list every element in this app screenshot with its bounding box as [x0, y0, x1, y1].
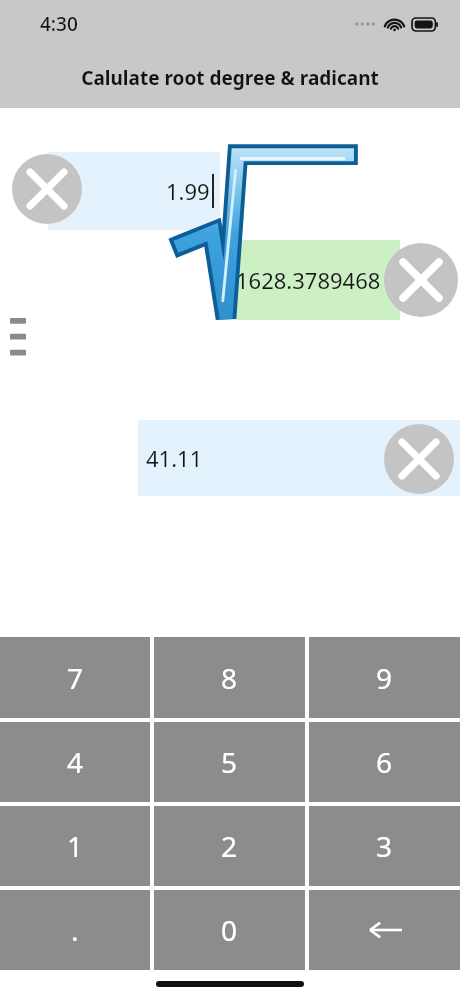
- button[interactable]: 0: [154, 890, 305, 970]
- button[interactable]: 5: [154, 722, 305, 802]
- staticText: 1: [67, 827, 84, 865]
- button[interactable]: 1628.3789468: [236, 240, 400, 320]
- button[interactable]: Clear result: [384, 424, 454, 494]
- staticText: .: [71, 911, 79, 949]
- button[interactable]: Clear root degree: [12, 154, 82, 224]
- button[interactable]: 6: [309, 722, 460, 802]
- button[interactable]: 2: [154, 806, 305, 886]
- staticText: 4: [67, 743, 84, 781]
- staticText: 1.99: [166, 176, 210, 206]
- button[interactable]: .: [0, 890, 150, 970]
- staticText: 6: [376, 743, 393, 781]
- staticText: 5: [221, 743, 238, 781]
- button[interactable]: Clear radicand: [384, 243, 458, 317]
- button[interactable]: 7: [0, 637, 150, 718]
- button[interactable]: 9: [309, 637, 460, 718]
- staticText: Calulate root degree & radicant: [81, 65, 379, 91]
- button[interactable]: Reorder: [8, 318, 28, 362]
- staticText: 7: [67, 659, 84, 697]
- staticText: 8: [221, 659, 238, 697]
- staticText: 0: [221, 911, 238, 949]
- button[interactable]: 1.99: [48, 152, 220, 230]
- staticText: 9: [376, 659, 393, 697]
- staticText: 3: [376, 827, 393, 865]
- button[interactable]: 4: [0, 722, 150, 802]
- staticText: 1628.3789468: [236, 265, 381, 295]
- button[interactable]: 8: [154, 637, 305, 718]
- button[interactable]: 41.11: [138, 420, 460, 496]
- button[interactable]: 3: [309, 806, 460, 886]
- staticText: 2: [221, 827, 238, 865]
- button[interactable]: 1: [0, 806, 150, 886]
- staticText: 4:30: [40, 11, 78, 37]
- button[interactable]: Backspace: [309, 890, 460, 970]
- staticText: 41.11: [146, 443, 203, 473]
